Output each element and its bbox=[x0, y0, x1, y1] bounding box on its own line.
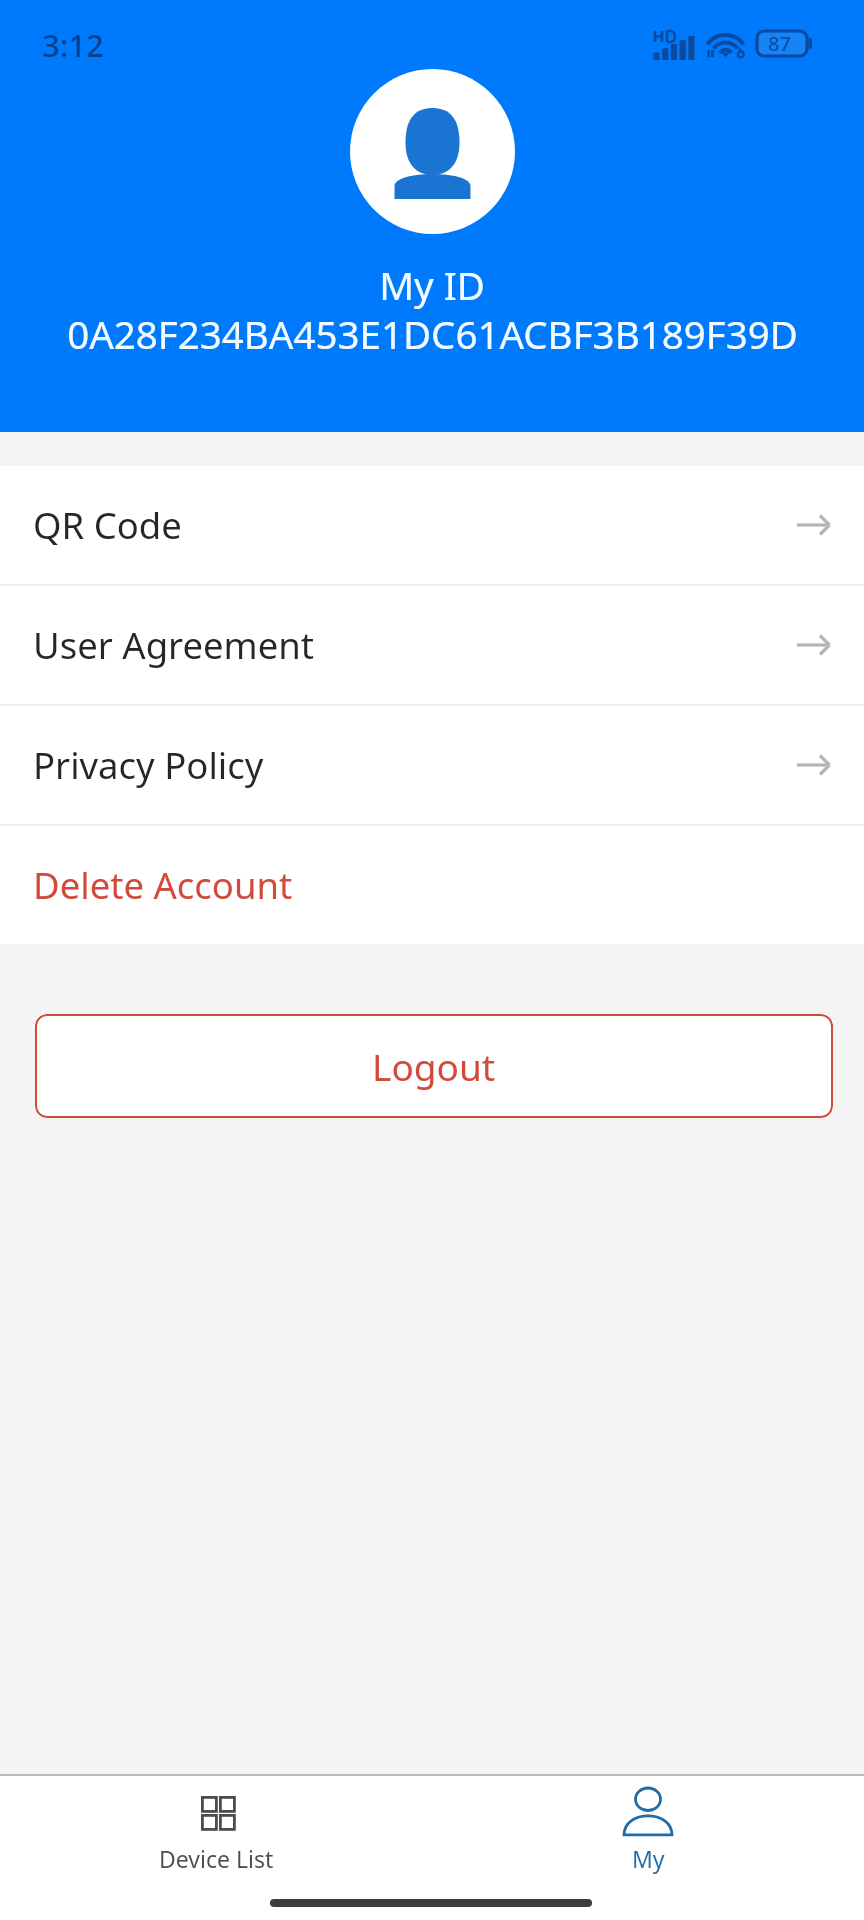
button[interactable]: QR Code bbox=[0, 466, 864, 584]
button[interactable]: User Agreement bbox=[0, 586, 864, 704]
staticText: 0A28F234BA453E1DC61ACBF3B189F39D bbox=[67, 308, 798, 360]
button[interactable]: Device List bbox=[0, 1774, 432, 1896]
button[interactable]: Delete Account bbox=[0, 826, 864, 944]
staticText: Device List bbox=[159, 1843, 274, 1874]
button[interactable]: Profile picture bbox=[350, 69, 515, 234]
button[interactable]: Logout bbox=[35, 1014, 833, 1118]
staticText: My bbox=[632, 1843, 665, 1874]
button[interactable]: Privacy Policy bbox=[0, 706, 864, 824]
staticText: Privacy Policy bbox=[33, 740, 264, 790]
staticText: My ID bbox=[379, 259, 485, 311]
staticText: User Agreement bbox=[33, 620, 315, 670]
staticText: 3:12 bbox=[42, 24, 104, 66]
button[interactable]: My bbox=[432, 1774, 864, 1896]
staticText: Delete Account bbox=[33, 860, 293, 910]
staticText: 87 bbox=[768, 30, 791, 57]
staticText: QR Code bbox=[33, 500, 182, 550]
staticText: Logout bbox=[372, 1041, 496, 1091]
